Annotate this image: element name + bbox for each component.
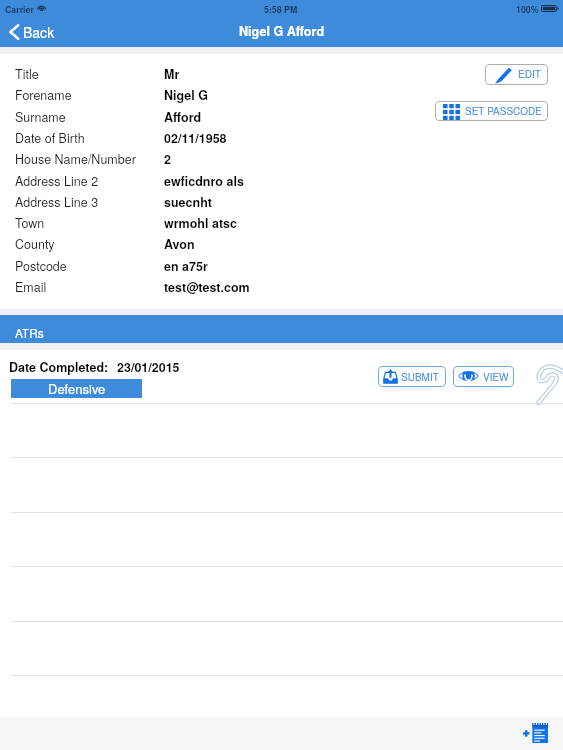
staticText: Town <box>15 214 45 232</box>
other: Battery full <box>541 5 559 12</box>
staticText: 23/01/2015 <box>117 358 180 376</box>
button[interactable]: Back <box>6 20 63 44</box>
staticText: County <box>15 235 55 253</box>
button[interactable]: New note <box>521 721 551 745</box>
staticText: Date Completed: <box>9 358 109 376</box>
staticText: House Name/Number <box>15 150 136 168</box>
button[interactable] <box>0 404 563 458</box>
staticText: Postcode <box>15 257 67 275</box>
staticText: Nigel G Afford <box>239 22 325 40</box>
staticText: SUBMIT <box>401 370 439 384</box>
staticText: 5:58 PM <box>264 3 298 16</box>
staticText: Afford <box>164 108 202 126</box>
staticText: Title <box>15 65 39 83</box>
staticText: Address Line 3 <box>15 193 99 211</box>
staticText: test@test.com <box>164 278 250 296</box>
staticText: Address Line 2 <box>15 172 99 190</box>
staticText: Email <box>15 278 47 296</box>
staticText: 100% <box>516 3 539 16</box>
staticText: Mr <box>164 65 180 83</box>
other: Wi-Fi <box>37 5 46 11</box>
staticText: Carrier <box>5 3 34 16</box>
staticText: ewficdnro als <box>164 172 244 190</box>
button[interactable]: VIEW <box>453 366 514 387</box>
staticText: EDIT <box>518 67 541 81</box>
button[interactable] <box>0 622 563 676</box>
button[interactable]: SET PASSCODE <box>435 101 548 121</box>
other: Back <box>9 24 19 40</box>
staticText: Nigel G <box>164 86 208 104</box>
staticText: 2 <box>164 150 171 168</box>
staticText: Date of Birth <box>15 129 85 147</box>
staticText: VIEW <box>483 370 509 384</box>
staticText: Avon <box>164 235 195 253</box>
staticText: 02/11/1958 <box>164 129 227 147</box>
staticText: SET PASSCODE <box>465 104 542 118</box>
staticText: Surname <box>15 108 66 126</box>
staticText: suecnht <box>164 193 212 211</box>
staticText: Back <box>23 22 55 42</box>
staticText: ATRs <box>15 324 44 341</box>
button[interactable] <box>0 350 563 404</box>
button[interactable] <box>0 513 563 567</box>
staticText: Forename <box>15 86 72 104</box>
staticText: wrmohl atsc <box>164 214 237 232</box>
staticText: en a75r <box>164 257 208 275</box>
button[interactable]: Defensive <box>11 379 142 398</box>
staticText: Defensive <box>48 379 106 398</box>
button[interactable] <box>0 315 563 343</box>
button[interactable]: SUBMIT <box>378 366 446 387</box>
button[interactable]: EDIT <box>485 64 548 85</box>
